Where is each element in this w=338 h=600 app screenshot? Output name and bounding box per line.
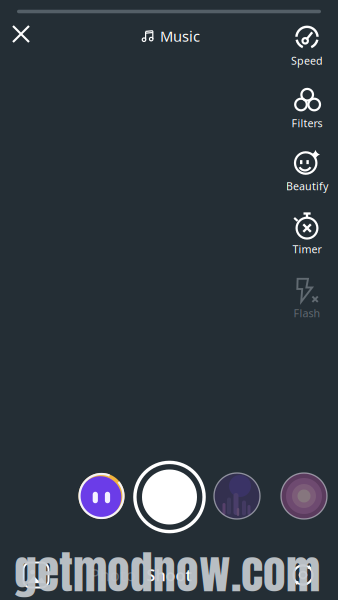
button[interactable]: Photo <box>80 557 146 593</box>
button[interactable]: Face effect <box>77 472 125 520</box>
button[interactable]: Filters <box>280 85 334 131</box>
staticText: Shoot <box>146 564 191 586</box>
staticText: Beautify <box>286 179 328 193</box>
button[interactable]: Timer <box>280 211 334 257</box>
staticText: Speed <box>291 53 323 68</box>
button[interactable]: Close <box>1 14 41 54</box>
button[interactable]: City effect <box>213 472 261 520</box>
staticText: Music <box>160 26 200 46</box>
button[interactable]: Effects <box>15 554 56 595</box>
staticText: Photo <box>90 564 136 586</box>
staticText: Flash <box>293 306 320 320</box>
button[interactable]: Flash <box>280 275 334 321</box>
staticText: Filters <box>291 116 322 130</box>
button[interactable]: Shutter <box>131 459 207 535</box>
staticText: Timer <box>292 242 321 256</box>
button[interactable]: Shoot <box>136 557 201 593</box>
button[interactable]: Speed <box>280 22 334 68</box>
button[interactable]: Flip camera <box>283 555 323 595</box>
button[interactable]: Galaxy effect <box>280 472 328 520</box>
button[interactable]: Beautify <box>280 148 334 194</box>
button[interactable]: Music <box>134 20 208 52</box>
staticText: getmodnow.com <box>14 538 320 600</box>
